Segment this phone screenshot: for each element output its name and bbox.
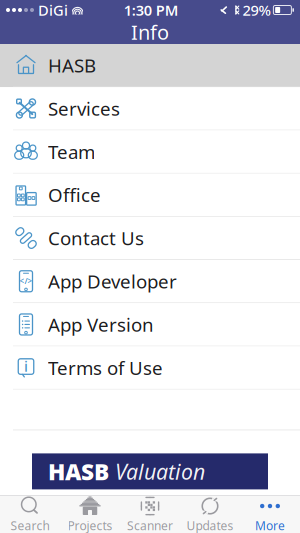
staticText: Terms of Use [48, 355, 163, 380]
button[interactable]: Contact Us [0, 217, 300, 260]
staticText: Valuation [109, 457, 205, 485]
staticText: Info [131, 19, 169, 45]
button[interactable]: Updates [180, 496, 240, 533]
staticText: Contact Us [48, 226, 144, 250]
staticText: Search [10, 517, 49, 533]
staticText: App Version [48, 312, 154, 337]
staticText: i [24, 356, 28, 376]
staticText: 29% [242, 0, 270, 20]
button[interactable]: HASB [0, 44, 300, 87]
staticText: HASB [48, 53, 96, 78]
button[interactable]: HASB Valuation advertisement [32, 453, 268, 489]
button[interactable]: Scanner [120, 496, 180, 533]
staticText: Office [48, 182, 101, 207]
staticText: Scanner [127, 517, 173, 533]
button[interactable]: More [240, 496, 300, 533]
button[interactable]: Search [0, 496, 60, 533]
button[interactable]: i [0, 346, 300, 390]
button[interactable]: </> [0, 260, 300, 303]
button[interactable]: Team [0, 130, 300, 174]
button[interactable]: Projects [60, 496, 120, 533]
button[interactable]: Services [0, 87, 300, 130]
button[interactable]: Office [0, 174, 300, 217]
staticText: Services [48, 96, 120, 121]
staticText: DiGi [38, 0, 68, 20]
staticText: Projects [67, 517, 112, 533]
staticText: 1:30 PM [124, 0, 179, 20]
button[interactable]: App Version [0, 303, 300, 346]
staticText: More [255, 517, 285, 533]
staticText: Team [48, 139, 95, 164]
staticText: HASB [48, 456, 109, 486]
staticText: </> [19, 275, 32, 286]
staticText: App Developer [48, 269, 177, 294]
staticText: Updates [186, 517, 233, 533]
